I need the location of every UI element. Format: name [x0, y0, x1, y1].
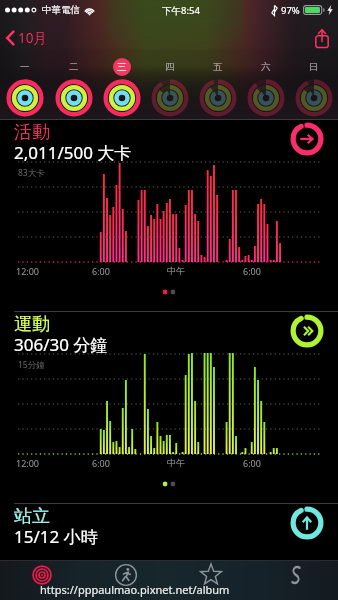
button[interactable]: Workouts	[84, 561, 168, 600]
staticText: 2,011/500 大卡	[14, 141, 132, 164]
staticText: 306/30 分鐘	[14, 333, 108, 356]
button[interactable]: 五	[194, 56, 242, 116]
button[interactable]: 一	[0, 56, 49, 116]
staticText: 中午	[167, 265, 185, 276]
staticText: 一	[20, 61, 30, 73]
staticText: 15/12 小時	[14, 525, 98, 548]
staticText: 站立	[14, 505, 50, 528]
staticText: 10月	[18, 29, 47, 47]
button[interactable]: Open 站立 details	[290, 506, 324, 540]
button[interactable]: Open 運動 details	[290, 314, 324, 348]
button[interactable]: Awards	[168, 561, 253, 600]
staticText: 6:00	[92, 265, 110, 277]
staticText: 6:00	[243, 457, 261, 469]
staticText: 運動	[14, 313, 50, 336]
staticText: 五	[213, 61, 223, 73]
staticText: 97%	[281, 4, 300, 17]
button[interactable]: 10月	[0, 24, 57, 52]
staticText: 中華電信	[42, 4, 80, 16]
staticText: 6:00	[92, 457, 110, 469]
staticText: 六	[261, 61, 271, 73]
staticText: 四	[165, 61, 175, 73]
staticText: 活動	[14, 121, 50, 144]
button[interactable]: Activity	[0, 561, 84, 600]
button[interactable]: Sharing	[253, 561, 338, 600]
staticText: 日	[309, 61, 319, 73]
staticText: 12:00	[16, 265, 40, 277]
button[interactable]: 四	[146, 56, 194, 116]
staticText: 12:00	[16, 457, 40, 469]
staticText: 15分鐘	[18, 359, 45, 371]
staticText: 三	[117, 61, 127, 73]
button[interactable]: 二	[49, 56, 98, 116]
staticText: 中午	[167, 457, 185, 468]
button[interactable]: 日	[290, 56, 338, 116]
button[interactable]: Share	[303, 25, 338, 52]
staticText: 下午8:54	[162, 4, 200, 17]
staticText: 83大卡	[18, 167, 45, 179]
button[interactable]: 三	[98, 56, 146, 116]
staticText: 二	[69, 61, 79, 73]
button[interactable]: Open 活動 details	[290, 122, 324, 156]
button[interactable]: 六	[242, 56, 290, 116]
staticText: https://pppaulmao.pixnet.net/album	[40, 582, 230, 597]
staticText: 6:00	[243, 265, 261, 277]
